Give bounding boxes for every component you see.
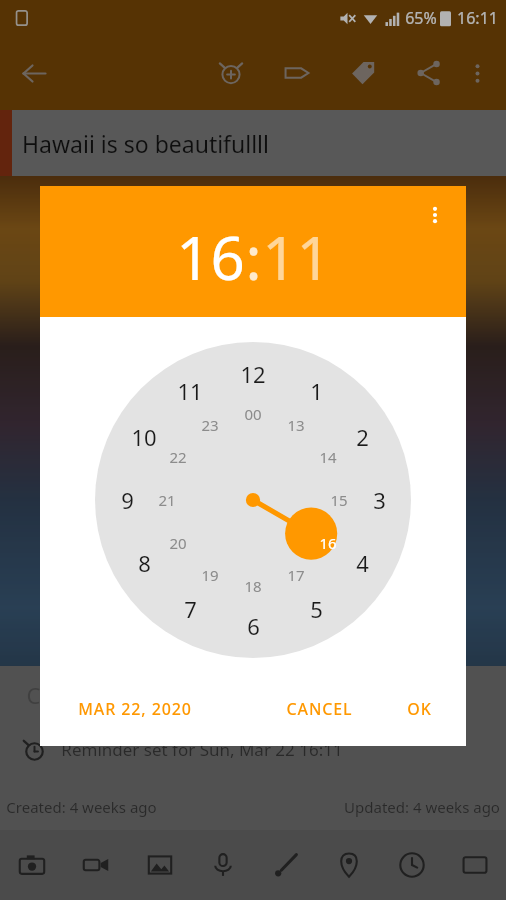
staticText: 9 — [121, 485, 134, 515]
button[interactable]: Camera — [0, 830, 64, 900]
staticText: 11 — [177, 376, 203, 406]
staticText: Hawaii is so beautifullll — [22, 128, 269, 159]
staticText: CANCEL — [286, 698, 353, 720]
staticText: Co — [26, 680, 54, 710]
button[interactable]: Note — [443, 830, 506, 900]
staticText: 65% — [405, 7, 437, 29]
staticText: 3 — [373, 485, 386, 515]
staticText: MAR 22, 2020 — [78, 698, 192, 720]
staticText: 1 — [310, 376, 323, 406]
button[interactable]: Video — [64, 830, 128, 900]
staticText: 22 — [169, 447, 187, 467]
button[interactable]: MAR 22, 2020 — [70, 686, 200, 732]
button[interactable]: Add reminder — [208, 50, 254, 96]
staticText: 16:11 — [457, 7, 498, 29]
staticText: 10 — [131, 422, 157, 452]
button[interactable]: OK — [399, 686, 440, 732]
staticText: : — [245, 216, 262, 298]
staticText: 8 — [138, 548, 151, 578]
staticText: 15 — [330, 490, 348, 510]
staticText: 6 — [247, 611, 260, 641]
staticText: 23 — [201, 415, 219, 435]
staticText: 18 — [244, 576, 262, 596]
button[interactable]: 16 — [176, 216, 245, 298]
staticText: Updated: 4 weeks ago — [344, 797, 500, 817]
staticText: Reminder set for Sun, Mar 22 16:11 — [61, 738, 343, 761]
button[interactable]: Share — [406, 50, 452, 96]
button[interactable]: Time — [380, 830, 443, 900]
button[interactable]: Label — [274, 50, 320, 96]
staticText: 16 — [319, 533, 337, 553]
staticText: 12 — [240, 359, 266, 389]
staticText: 21 — [158, 490, 176, 510]
button[interactable]: More options — [412, 192, 458, 238]
staticText: 00 — [244, 404, 262, 424]
staticText: 4 — [356, 548, 369, 578]
button[interactable]: Microphone — [191, 830, 254, 900]
button[interactable]: Favorite — [340, 50, 386, 96]
button[interactable]: Clock face — [95, 342, 411, 658]
staticText: 13 — [287, 415, 305, 435]
staticText: 2 — [356, 422, 369, 452]
button[interactable]: Draw — [254, 830, 317, 900]
button[interactable]: Back — [10, 49, 58, 97]
button[interactable]: CANCEL — [278, 686, 361, 732]
staticText: 14 — [319, 447, 337, 467]
staticText: 5 — [310, 594, 323, 624]
button[interactable]: 11 — [262, 216, 331, 298]
button[interactable]: Hawaii is so beautifullll — [0, 110, 506, 176]
button[interactable]: Image — [128, 830, 191, 900]
button[interactable]: Location — [317, 830, 380, 900]
staticText: 17 — [287, 565, 305, 585]
staticText: 19 — [201, 565, 219, 585]
staticText: 20 — [169, 533, 187, 553]
button[interactable]: More options — [454, 50, 500, 96]
staticText: 7 — [184, 594, 197, 624]
staticText: Created: 4 weeks ago — [6, 797, 157, 817]
staticText: OK — [407, 698, 432, 720]
